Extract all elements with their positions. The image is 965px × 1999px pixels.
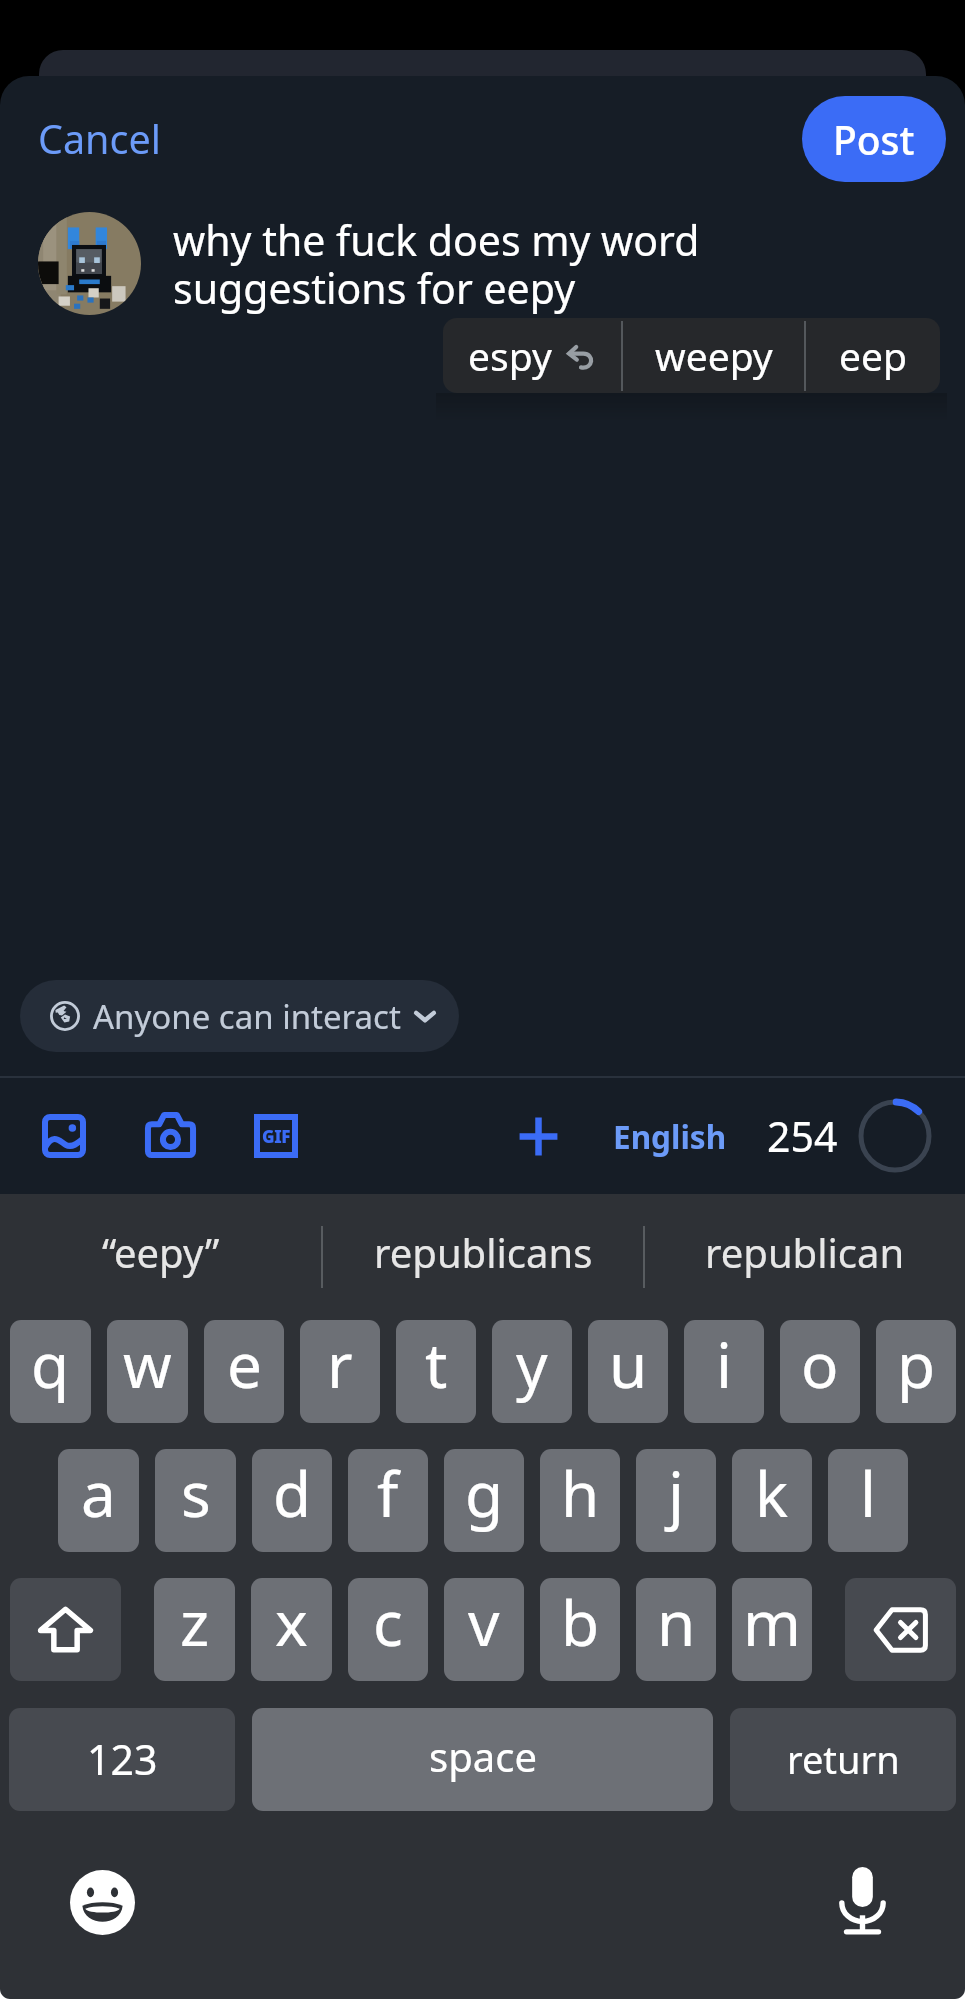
- staticText: m: [743, 1580, 801, 1664]
- button[interactable]: u: [588, 1320, 668, 1423]
- staticText: Anyone can interact: [93, 994, 401, 1039]
- staticText: c: [373, 1580, 403, 1664]
- staticText: d: [273, 1451, 312, 1535]
- staticText: z: [180, 1580, 210, 1664]
- staticText: l: [860, 1451, 876, 1535]
- button[interactable]: English: [609, 1107, 731, 1166]
- staticText: weepy: [655, 329, 773, 382]
- staticText: 254: [767, 1108, 838, 1164]
- button[interactable]: q: [10, 1320, 91, 1423]
- staticText: b: [561, 1580, 600, 1664]
- button[interactable]: Backspace: [845, 1578, 956, 1681]
- staticText: h: [561, 1451, 600, 1535]
- button[interactable]: republican: [645, 1194, 965, 1320]
- staticText: g: [465, 1451, 504, 1535]
- staticText: a: [81, 1451, 116, 1535]
- staticText: p: [897, 1322, 936, 1406]
- staticText: r: [327, 1322, 353, 1406]
- button[interactable]: Add image: [32, 1104, 96, 1168]
- staticText: w: [123, 1322, 172, 1406]
- staticText: q: [31, 1322, 70, 1406]
- button[interactable]: return: [730, 1708, 956, 1811]
- staticText: why the fuck does my word suggestions fo…: [173, 212, 713, 316]
- staticText: space: [429, 1729, 537, 1783]
- button[interactable]: r: [300, 1320, 380, 1423]
- button[interactable]: b: [540, 1578, 620, 1681]
- staticText: GIF: [262, 1125, 291, 1148]
- button[interactable]: espy: [443, 318, 621, 393]
- staticText: k: [755, 1451, 789, 1535]
- button[interactable]: p: [876, 1320, 956, 1423]
- button[interactable]: a: [58, 1449, 139, 1552]
- staticText: y: [516, 1322, 548, 1406]
- staticText: 123: [87, 1731, 158, 1787]
- staticText: espy: [468, 329, 552, 382]
- button[interactable]: Anyone can interact: [20, 980, 459, 1052]
- button[interactable]: x: [251, 1578, 332, 1681]
- staticText: u: [609, 1322, 648, 1406]
- button[interactable]: d: [252, 1449, 332, 1552]
- staticText: republican: [705, 1225, 905, 1279]
- staticText: republicans: [374, 1225, 593, 1279]
- staticText: j: [668, 1451, 684, 1535]
- button[interactable]: m: [732, 1578, 812, 1681]
- button[interactable]: l: [828, 1449, 908, 1552]
- button[interactable]: o: [780, 1320, 860, 1423]
- staticText: “eepy”: [102, 1225, 220, 1279]
- button[interactable]: c: [348, 1578, 428, 1681]
- button[interactable]: k: [732, 1449, 812, 1552]
- button[interactable]: 123: [9, 1708, 235, 1811]
- staticText: e: [227, 1322, 262, 1406]
- staticText: t: [425, 1322, 448, 1406]
- staticText: i: [716, 1322, 732, 1406]
- button[interactable]: j: [636, 1449, 716, 1552]
- button[interactable]: h: [540, 1449, 620, 1552]
- staticText: return: [787, 1733, 900, 1785]
- button[interactable]: Voice input: [822, 1861, 902, 1941]
- staticText: s: [181, 1451, 211, 1535]
- button[interactable]: eep: [806, 318, 940, 393]
- button[interactable]: Post: [802, 96, 946, 182]
- button[interactable]: g: [444, 1449, 524, 1552]
- button[interactable]: Camera: [138, 1104, 202, 1168]
- button[interactable]: Shift: [10, 1578, 121, 1681]
- button[interactable]: republicans: [323, 1194, 643, 1320]
- button[interactable]: s: [155, 1449, 236, 1552]
- staticText: eep: [839, 329, 907, 382]
- button[interactable]: e: [204, 1320, 284, 1423]
- staticText: n: [657, 1580, 696, 1664]
- button[interactable]: f: [348, 1449, 428, 1552]
- staticText: f: [377, 1451, 399, 1535]
- button[interactable]: space: [252, 1708, 713, 1811]
- button[interactable]: n: [636, 1578, 716, 1681]
- button[interactable]: y: [492, 1320, 572, 1423]
- button[interactable]: t: [396, 1320, 476, 1423]
- button[interactable]: Add: [503, 1101, 573, 1171]
- button[interactable]: i: [684, 1320, 764, 1423]
- button[interactable]: “eepy”: [0, 1194, 321, 1320]
- staticText: o: [801, 1322, 839, 1406]
- staticText: Cancel: [38, 112, 161, 166]
- button[interactable]: v: [444, 1578, 524, 1681]
- staticText: x: [275, 1580, 308, 1664]
- button[interactable]: weepy: [623, 318, 804, 393]
- button[interactable]: w: [107, 1320, 188, 1423]
- button[interactable]: GIF: [244, 1104, 308, 1168]
- button[interactable]: Emoji: [62, 1862, 142, 1942]
- staticText: v: [468, 1580, 500, 1664]
- button[interactable]: Cancel: [32, 102, 167, 176]
- button[interactable]: z: [154, 1578, 235, 1681]
- staticText: English: [613, 1115, 727, 1158]
- staticText: Post: [833, 113, 915, 166]
